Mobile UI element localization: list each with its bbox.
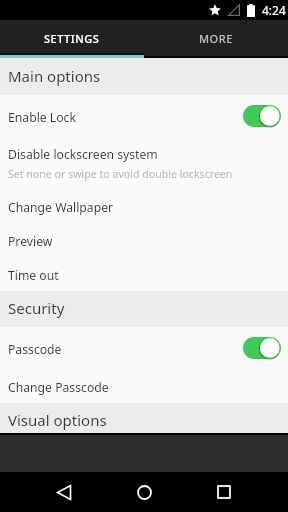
staticText: Security <box>8 298 65 318</box>
button[interactable]: Time out <box>0 257 288 291</box>
staticText: Change Wallpaper <box>8 199 281 216</box>
staticText: Preview <box>8 233 281 250</box>
staticText: Disable lockscreen system <box>8 146 158 163</box>
staticText: Main options <box>8 66 101 86</box>
staticText: Set none or swipe to avoid double locksc… <box>8 167 233 181</box>
button[interactable]: Home <box>124 472 164 512</box>
staticText: Enable Lock <box>8 109 243 126</box>
button[interactable]: SETTINGS <box>0 20 144 58</box>
staticText: 4:24 <box>262 2 286 18</box>
staticText: Visual options <box>8 410 107 430</box>
staticText: Time out <box>8 267 281 284</box>
staticText: Passcode <box>8 341 243 358</box>
button[interactable]: Change Wallpaper <box>0 189 288 223</box>
button[interactable]: Preview <box>0 223 288 257</box>
button[interactable]: Toggle <box>243 336 281 360</box>
staticText: SETTINGS <box>44 31 100 46</box>
button[interactable]: Enable Lock <box>0 95 288 137</box>
button[interactable]: MORE <box>144 20 288 58</box>
button[interactable]: Toggle <box>243 104 281 128</box>
button[interactable]: Recents <box>204 472 244 512</box>
button[interactable]: Passcode <box>0 327 288 369</box>
button[interactable]: Disable lockscreen system <box>0 137 288 189</box>
staticText: Change Passcode <box>8 379 281 396</box>
button[interactable]: Change Passcode <box>0 369 288 403</box>
button[interactable]: Back <box>44 472 84 512</box>
staticText: MORE <box>199 31 233 46</box>
